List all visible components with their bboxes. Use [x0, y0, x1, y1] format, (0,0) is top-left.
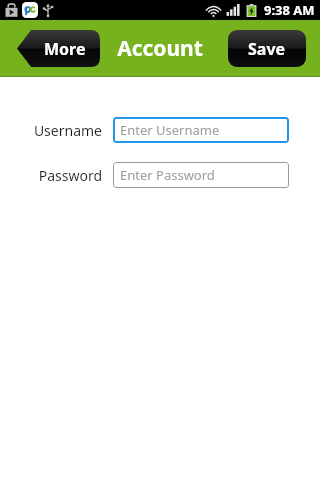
- staticText: 9:38 AM: [264, 1, 315, 19]
- staticText: Username: [33, 121, 102, 140]
- staticText: Enter Password: [120, 166, 215, 184]
- staticText: Password: [38, 166, 102, 185]
- staticText: Enter Username: [120, 121, 220, 139]
- staticText: Save: [248, 38, 286, 60]
- button[interactable]: Save: [228, 30, 306, 67]
- button[interactable]: Enter Password: [113, 162, 289, 188]
- button[interactable]: Enter Username: [113, 117, 289, 143]
- button[interactable]: More: [17, 30, 100, 67]
- staticText: More: [44, 38, 86, 60]
- staticText: Account: [117, 34, 203, 63]
